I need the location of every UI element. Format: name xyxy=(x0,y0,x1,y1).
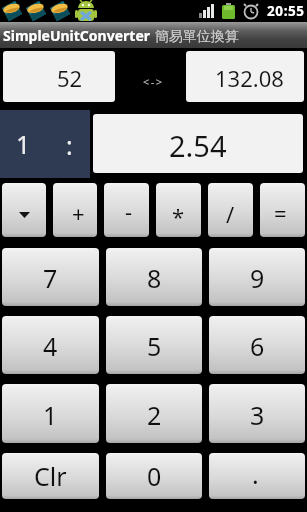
button[interactable]: * xyxy=(156,183,201,237)
staticText: 1 xyxy=(43,398,58,432)
staticText: 52 xyxy=(57,63,83,93)
staticText: 4 xyxy=(43,329,58,363)
staticText: : xyxy=(66,128,73,162)
staticText: 3 xyxy=(250,398,265,432)
staticText: Clr xyxy=(34,459,67,493)
staticText: 20:55 xyxy=(267,2,305,20)
button[interactable]: 1 xyxy=(2,384,99,443)
staticText: 132.08 xyxy=(215,63,284,93)
staticText: 8 xyxy=(147,261,162,295)
staticText: 9 xyxy=(250,261,265,295)
button[interactable]: . xyxy=(209,453,305,499)
staticText: 0 xyxy=(147,459,162,493)
button[interactable]: 0 xyxy=(106,453,202,499)
button[interactable]: 5 xyxy=(106,316,202,374)
button[interactable]: 8 xyxy=(106,248,202,306)
button[interactable]: / xyxy=(208,183,253,237)
staticText: / xyxy=(226,199,235,229)
button[interactable]: = xyxy=(260,183,305,237)
staticText: 2.54 xyxy=(169,126,227,165)
staticText: + xyxy=(72,198,85,228)
staticText: 6 xyxy=(250,329,265,363)
button[interactable]: 2 xyxy=(106,384,202,443)
staticText: 1 xyxy=(16,127,31,161)
staticText: - xyxy=(125,196,133,226)
button[interactable]: 1 xyxy=(0,110,90,178)
button[interactable]: Clr xyxy=(2,453,99,499)
staticText: 7 xyxy=(43,261,58,295)
staticText: 簡易單位換算 xyxy=(151,26,239,45)
staticText: * xyxy=(172,201,185,231)
button[interactable] xyxy=(2,183,46,237)
button[interactable]: 9 xyxy=(209,248,305,306)
button[interactable]: <-> xyxy=(115,51,186,102)
staticText: = xyxy=(274,198,287,228)
staticText: 5 xyxy=(147,329,162,363)
button[interactable]: 3 xyxy=(209,384,305,443)
staticText: SimpleUnitConverter xyxy=(3,26,151,45)
button[interactable]: + xyxy=(53,183,97,237)
button[interactable]: 132.08 xyxy=(186,51,304,102)
button[interactable]: 7 xyxy=(2,248,99,306)
staticText: . xyxy=(252,457,259,491)
button[interactable]: - xyxy=(104,183,149,237)
button[interactable]: 6 xyxy=(209,316,305,374)
button[interactable]: 52 xyxy=(3,51,115,102)
button[interactable]: 2.54 xyxy=(93,114,303,173)
staticText: 2 xyxy=(147,398,162,432)
button[interactable]: 4 xyxy=(2,316,99,374)
staticText: <-> xyxy=(143,74,164,89)
